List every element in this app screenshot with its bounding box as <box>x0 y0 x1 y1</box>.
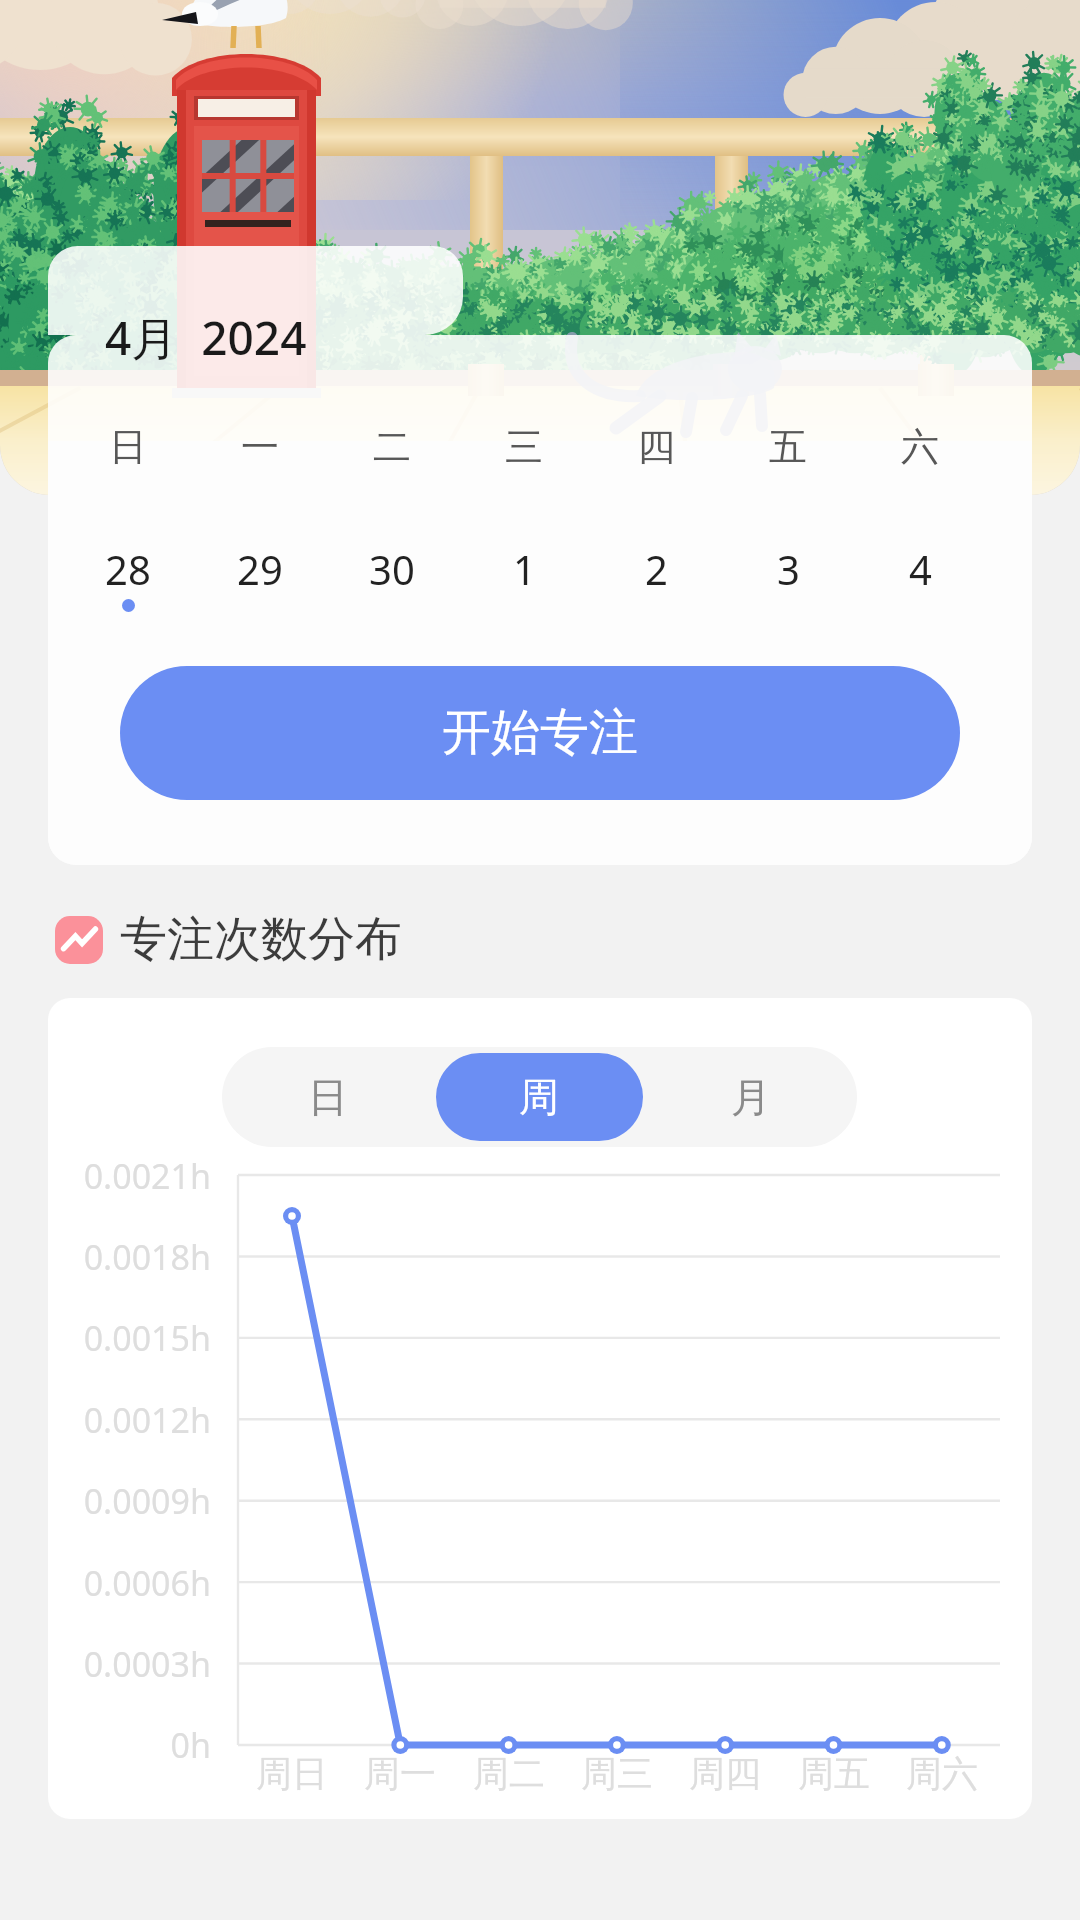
button[interactable]: 28 <box>62 542 194 612</box>
staticText: 周二 <box>473 1751 545 1796</box>
staticText: 日 <box>109 423 147 471</box>
staticText: 月 <box>731 1072 771 1122</box>
staticText: 周日 <box>256 1751 328 1796</box>
staticText: 周 <box>519 1072 559 1122</box>
staticText: 周一 <box>364 1751 436 1796</box>
staticText: 二 <box>373 423 411 471</box>
staticText: 日 <box>308 1072 348 1122</box>
staticText: 0.0003h <box>83 1641 211 1687</box>
staticText: 3 <box>777 542 800 596</box>
staticText: 四 <box>637 423 675 471</box>
staticText: 0.0006h <box>83 1560 211 1606</box>
staticText: 0.0021h <box>83 1153 211 1199</box>
button[interactable]: 29 <box>194 542 326 599</box>
staticText: 30 <box>369 542 415 596</box>
staticText: 0.0018h <box>83 1234 211 1280</box>
button[interactable]: 开始专注 <box>120 666 960 800</box>
staticText: 专注次数分布 <box>120 910 402 969</box>
staticText: 0h <box>170 1722 211 1768</box>
button[interactable]: 专注次数分布 <box>55 910 402 969</box>
staticText: 0.0009h <box>83 1478 211 1524</box>
staticText: 1 <box>513 542 536 596</box>
staticText: 周六 <box>906 1751 978 1796</box>
button[interactable]: 月 <box>645 1047 857 1147</box>
button[interactable]: 1 <box>458 542 590 599</box>
staticText: 0.0012h <box>83 1397 211 1443</box>
staticText: 一 <box>241 423 279 471</box>
button[interactable]: 4 <box>854 542 986 599</box>
staticText: 开始专注 <box>442 702 638 764</box>
staticText: 0.0015h <box>83 1315 211 1361</box>
staticText: 五 <box>769 423 807 471</box>
staticText: 六 <box>901 423 939 471</box>
button[interactable]: 30 <box>326 542 458 599</box>
staticText: 周四 <box>689 1751 761 1796</box>
staticText: 周五 <box>798 1751 870 1796</box>
button[interactable]: 日 <box>222 1047 433 1147</box>
staticText: 29 <box>237 542 283 596</box>
staticText: 4月 2024 <box>105 306 307 369</box>
staticText: 28 <box>105 542 151 596</box>
staticText: 三 <box>505 423 543 471</box>
button[interactable]: 周 <box>433 1047 645 1147</box>
button[interactable]: 3 <box>722 542 854 599</box>
staticText: 4 <box>909 542 932 596</box>
staticText: 2 <box>645 542 668 596</box>
staticText: 周三 <box>581 1751 653 1796</box>
button[interactable]: 2 <box>590 542 722 599</box>
